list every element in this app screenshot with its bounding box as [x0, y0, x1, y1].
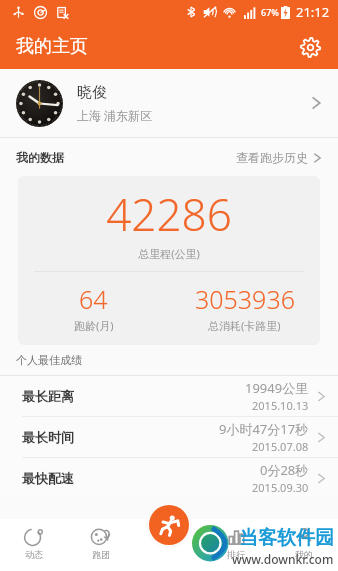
staticText: 0分28秒	[260, 461, 309, 479]
staticText: 64	[79, 282, 108, 316]
button[interactable]: 我的	[270, 519, 338, 571]
staticText: 个人最佳成绩	[16, 353, 82, 367]
staticText: 跑团	[92, 549, 110, 560]
button[interactable]: 跑团	[67, 519, 134, 571]
button[interactable]: 动态	[0, 519, 67, 571]
staticText: 上海 浦东新区	[77, 107, 153, 123]
staticText: 2015.10.13	[252, 398, 309, 413]
staticText: 我的主页	[16, 35, 88, 58]
staticText: 最快配速	[22, 470, 74, 486]
staticText: 当客软件园	[239, 526, 334, 550]
staticText: 我的	[295, 549, 313, 560]
staticText: 跑龄(月)	[74, 318, 114, 333]
staticText: 2015.07.08	[252, 439, 309, 454]
button[interactable]: 42286	[18, 176, 320, 345]
button[interactable]: 晓俊	[0, 69, 338, 137]
button[interactable]: 最长距离	[0, 376, 338, 416]
button[interactable]: Settings	[290, 27, 330, 67]
staticText: 21:12	[296, 3, 330, 21]
button[interactable]: 排行	[202, 519, 270, 571]
staticText: 动态	[25, 549, 43, 560]
staticText: 总里程(公里)	[18, 246, 320, 261]
staticText: 总消耗(卡路里)	[208, 318, 281, 333]
staticText: 查看跑步历史	[236, 150, 308, 165]
staticText: 晓俊	[77, 83, 107, 102]
staticText: 3053936	[195, 282, 295, 316]
staticText: 最长距离	[22, 388, 74, 404]
button[interactable]: 最长时间	[0, 417, 338, 457]
staticText: 我的数据	[16, 150, 64, 165]
staticText: 最长时间	[22, 429, 74, 445]
button[interactable]: 最快配速	[0, 458, 338, 498]
staticText: 2015.09.30	[252, 480, 309, 495]
staticText: 排行	[227, 549, 245, 560]
button[interactable]: Start run	[149, 505, 189, 545]
staticText: 9小时47分17秒	[219, 420, 309, 438]
staticText: 42286	[18, 184, 320, 244]
staticText: www.downkr.com	[232, 551, 334, 567]
staticText: 19949公里	[245, 379, 309, 397]
button[interactable]: 查看跑步历史	[236, 146, 322, 169]
staticText: 67%	[261, 6, 279, 18]
